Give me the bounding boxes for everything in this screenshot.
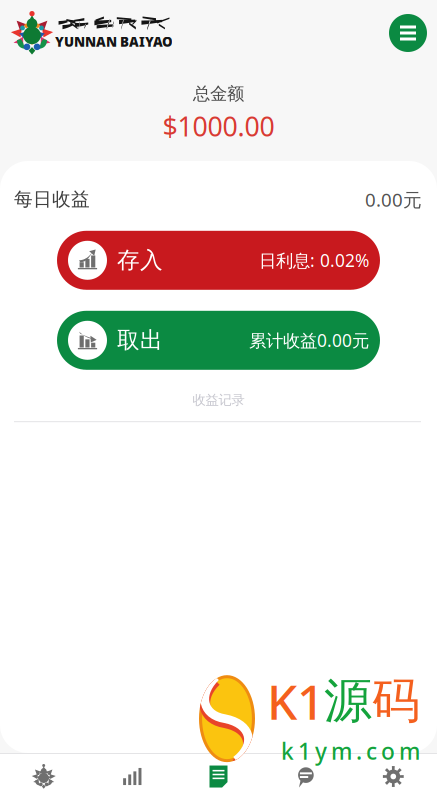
button[interactable]: Messages xyxy=(262,754,350,799)
staticText: K1 xyxy=(267,669,324,733)
staticText: 收益记录 xyxy=(192,392,244,408)
staticText: 每日收益 xyxy=(14,188,90,211)
button[interactable]: 取出 xyxy=(57,311,380,370)
staticText: k1ym.com xyxy=(281,736,420,766)
button[interactable]: Settings xyxy=(350,754,437,799)
button[interactable]: Records xyxy=(175,754,262,799)
button[interactable]: Home xyxy=(0,754,87,799)
staticText: 日利息: 0.02% xyxy=(259,249,369,272)
button[interactable]: Menu xyxy=(384,9,432,57)
staticText: 累计收益0.00元 xyxy=(249,329,369,352)
staticText: 存入 xyxy=(117,246,163,274)
staticText: YUNNAN BAIYAO xyxy=(55,33,173,50)
staticText: 源 xyxy=(324,671,372,730)
staticText: 0.00元 xyxy=(365,187,422,212)
button[interactable]: 存入 xyxy=(57,231,380,290)
button[interactable]: Statistics xyxy=(87,754,175,799)
staticText: 取出 xyxy=(117,326,163,354)
staticText: 码 xyxy=(372,671,420,730)
staticText: $1000.00 xyxy=(162,108,274,144)
staticText: 总金额 xyxy=(193,83,244,104)
